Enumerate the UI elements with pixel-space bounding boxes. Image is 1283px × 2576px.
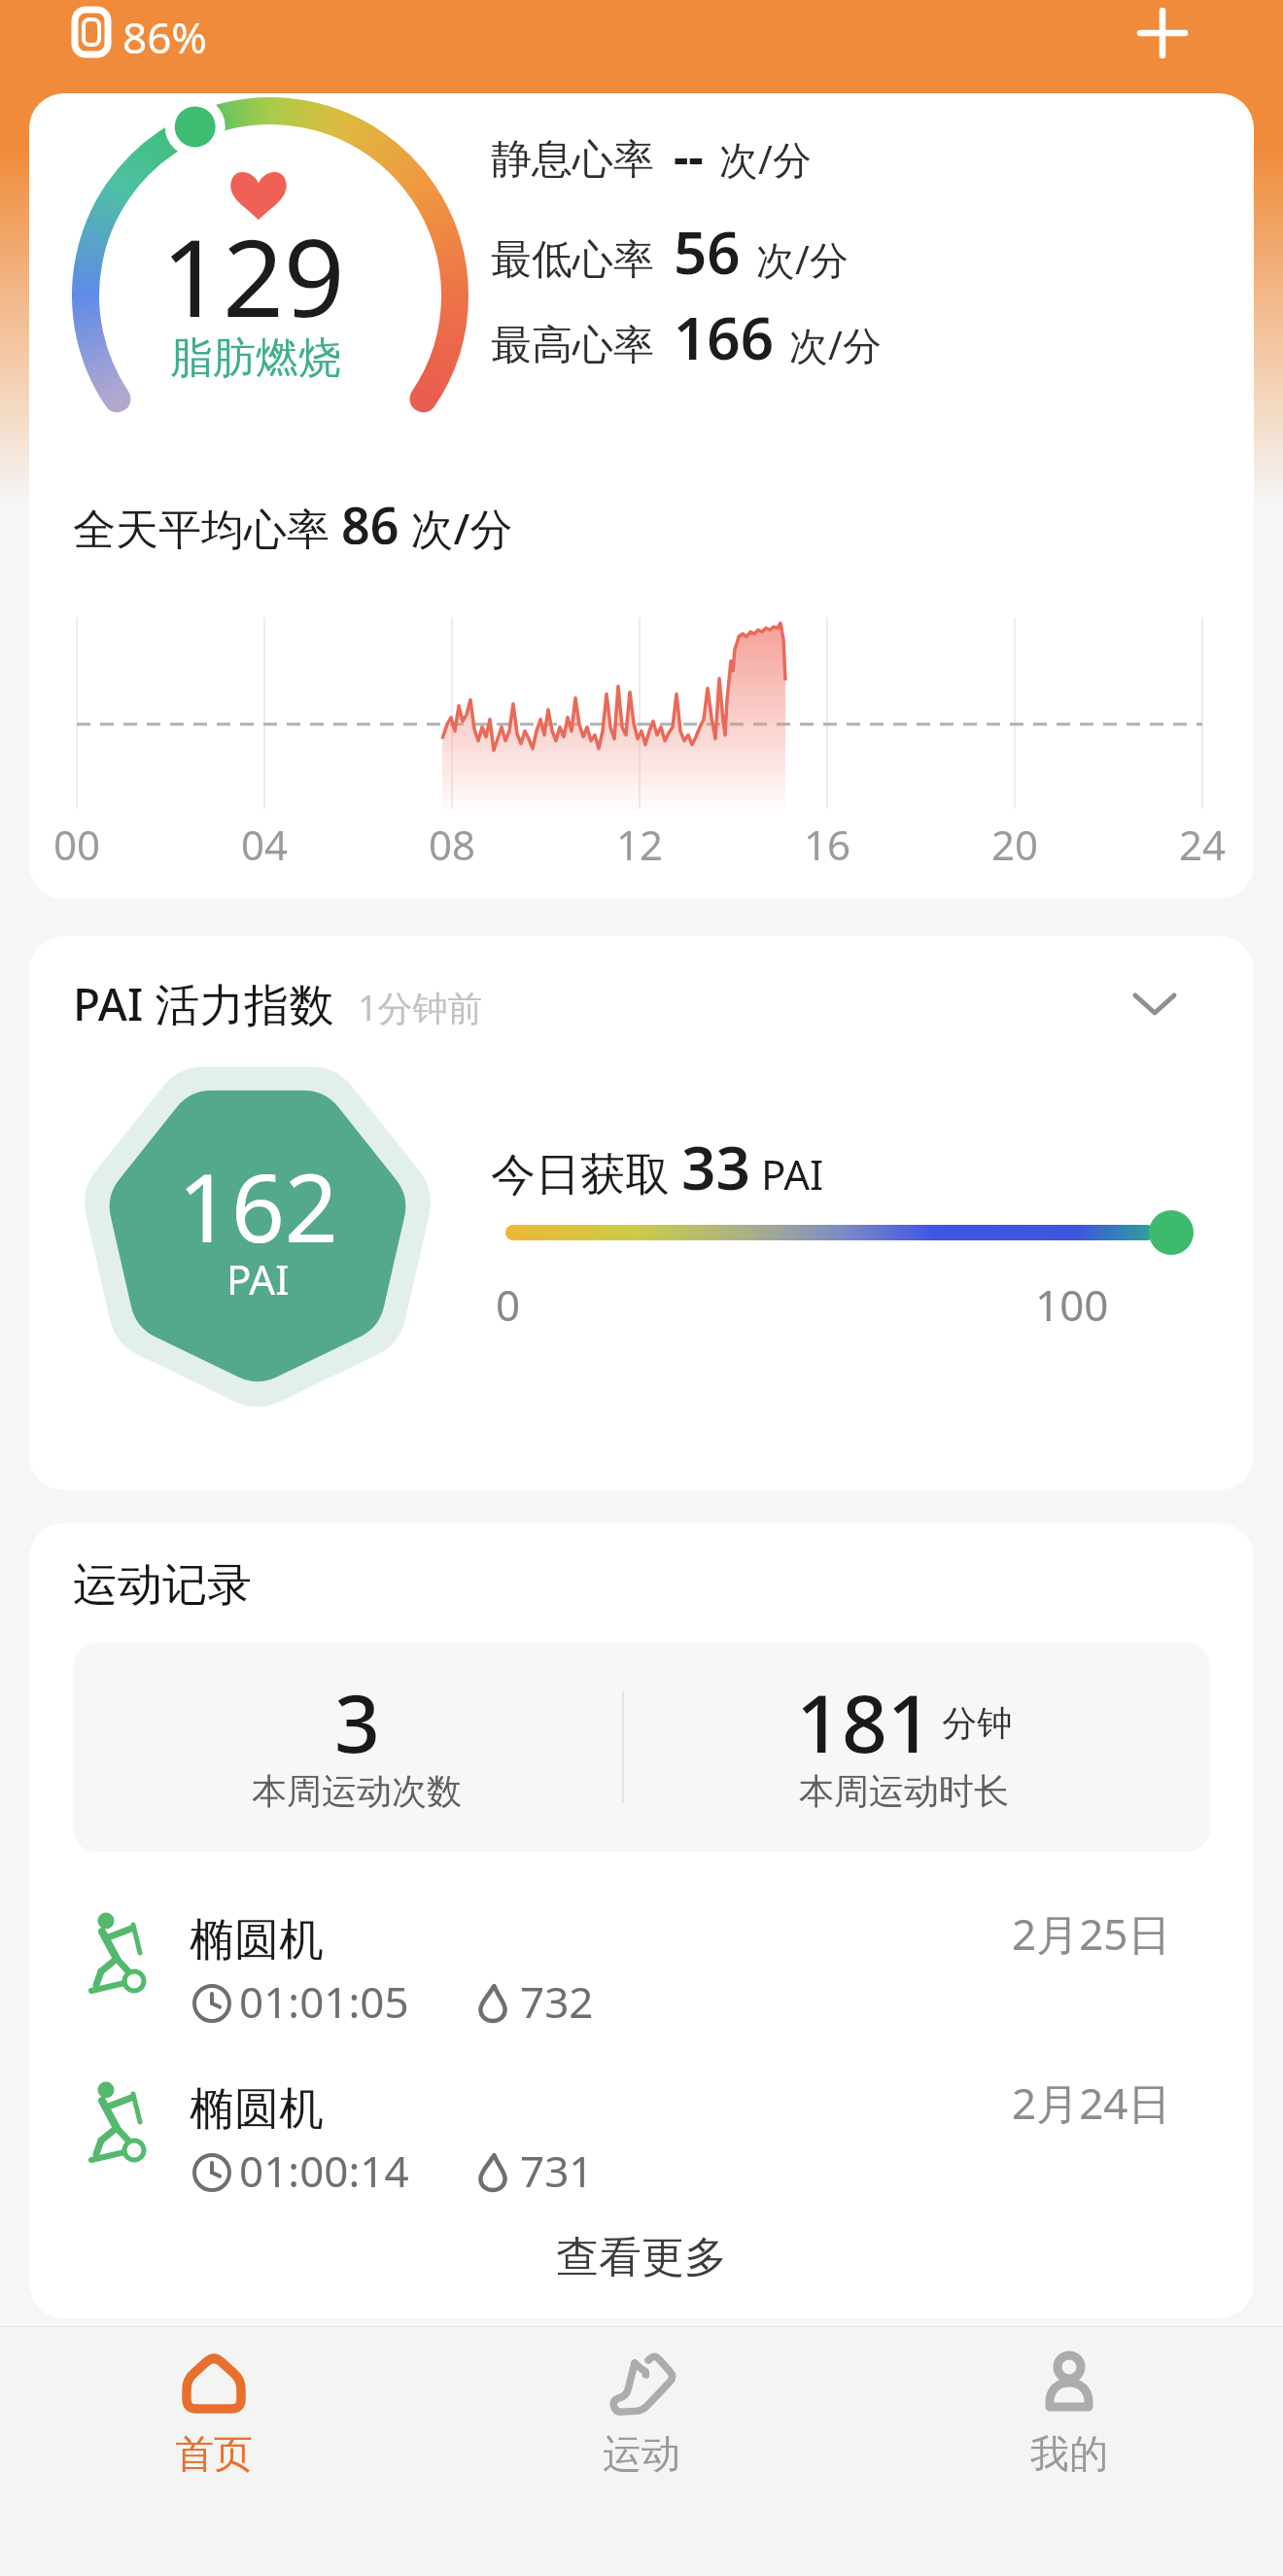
staticText: 首页	[175, 2429, 253, 2478]
staticText: 脂肪燃烧	[170, 331, 341, 385]
staticText: 2月24日	[1012, 2073, 1171, 2124]
staticText: 04	[241, 817, 289, 872]
staticText: 我的	[1030, 2429, 1108, 2478]
staticText: 100	[1035, 1275, 1109, 1334]
staticText: 731	[520, 2141, 594, 2192]
staticText: 01:01:05	[239, 1972, 409, 2023]
button[interactable]: 我的	[855, 2326, 1283, 2576]
staticText: 16	[804, 817, 851, 872]
staticText: 本周运动次数	[252, 1769, 462, 1813]
button[interactable]	[1116, 970, 1194, 1034]
staticText: 最低心率	[491, 234, 654, 286]
staticText: 次/分	[719, 132, 812, 186]
staticText: 椭圆机	[190, 2081, 324, 2130]
button[interactable]	[29, 1893, 1254, 2068]
staticText: 次/分	[789, 318, 882, 371]
staticText: 129	[161, 202, 345, 348]
staticText: 86%	[122, 8, 207, 58]
button[interactable]: 首页	[0, 2326, 428, 2576]
staticText: 2月25日	[1012, 1904, 1171, 1955]
button[interactable]: 运动	[428, 2326, 855, 2576]
staticText: 181	[796, 1667, 933, 1759]
staticText: 12	[616, 817, 664, 872]
staticText: 0	[496, 1275, 521, 1334]
button[interactable]: 查看更多	[496, 2226, 787, 2288]
button[interactable]	[29, 2068, 1254, 2243]
staticText: --	[674, 124, 704, 188]
staticText: 56	[674, 212, 741, 292]
staticText: 运动记录	[73, 1557, 252, 1612]
staticText: 椭圆机	[190, 1912, 324, 1961]
staticText: 08	[429, 817, 476, 872]
staticText: 最高心率	[491, 320, 654, 371]
staticText: 01:00:14	[239, 2141, 409, 2192]
staticText: 全天平均心率	[73, 499, 341, 553]
staticText: 33	[681, 1126, 750, 1194]
staticText: 分钟	[933, 1698, 1013, 1746]
staticText: 732	[520, 1972, 594, 2023]
staticText: PAI	[226, 1251, 290, 1306]
staticText: 00	[53, 817, 101, 872]
staticText: 1分钟前	[358, 984, 483, 1031]
staticText: 86	[341, 490, 399, 544]
staticText: 24	[1179, 817, 1227, 872]
staticText: 运动	[603, 2429, 680, 2478]
staticText: 静息心率	[491, 134, 654, 186]
staticText: PAI 活力指数	[73, 973, 334, 1027]
staticText: 次/分	[399, 499, 513, 553]
staticText: 20	[991, 817, 1039, 872]
staticText: 162	[178, 1142, 338, 1270]
staticText: 本周运动时长	[799, 1769, 1009, 1813]
staticText: 166	[674, 297, 774, 377]
staticText: PAI	[750, 1146, 824, 1201]
staticText: 今日获取	[491, 1142, 681, 1203]
button[interactable]	[1131, 2, 1194, 64]
staticText: 次/分	[756, 232, 849, 286]
staticText: 3	[334, 1667, 380, 1759]
staticText: 查看更多	[556, 2231, 727, 2284]
